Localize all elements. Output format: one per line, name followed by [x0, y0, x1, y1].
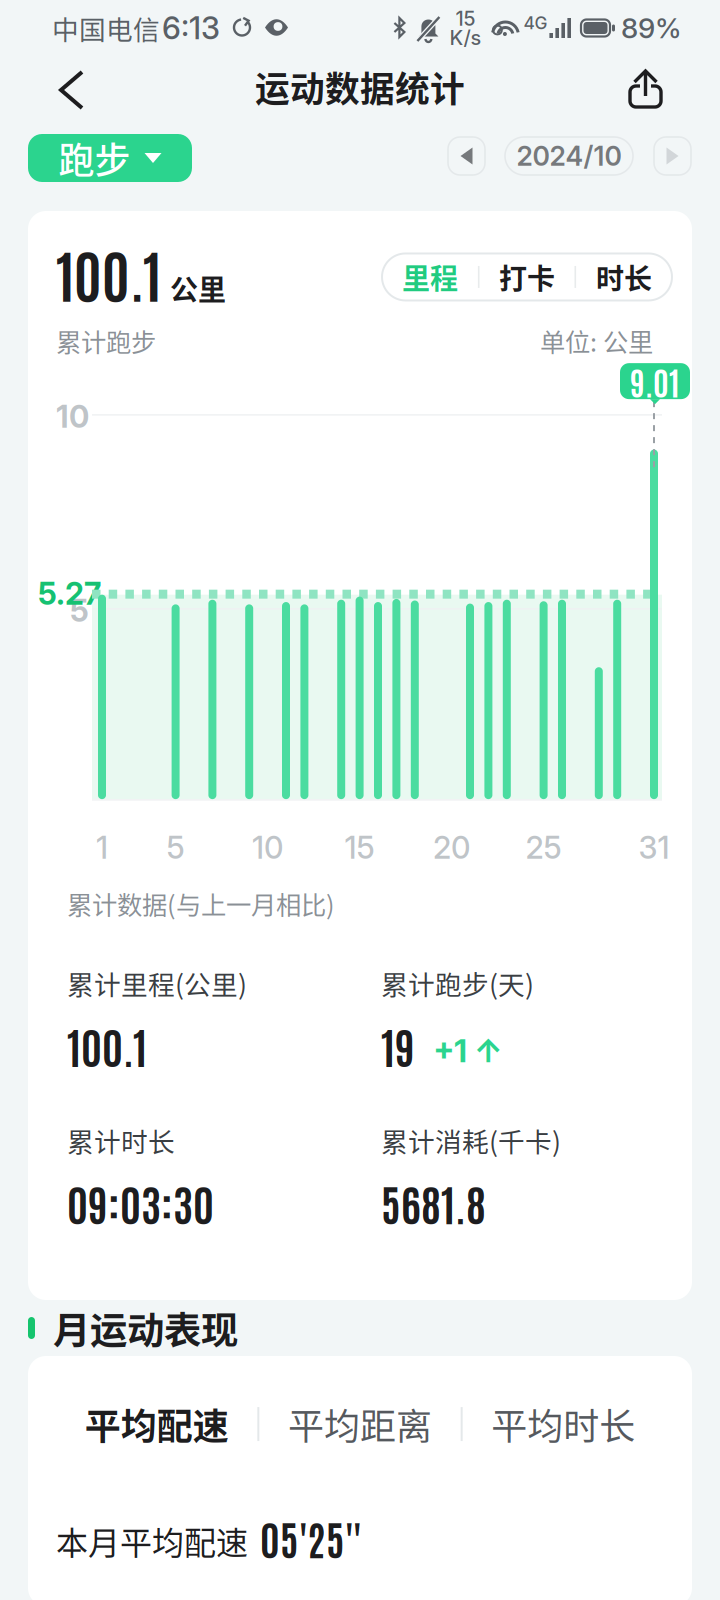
staticText: 10 [56, 398, 89, 435]
staticText: 本月平均配速 [56, 1517, 248, 1564]
staticText: 100.1 [67, 1018, 147, 1073]
staticText: 09:03:30 [67, 1175, 214, 1230]
staticText: 平均配速 [85, 1398, 229, 1450]
staticText: 打卡 [499, 257, 555, 297]
staticText: 累计跑步 [56, 322, 156, 359]
button[interactable]: 平均配速 [56, 1398, 257, 1450]
staticText: 5681.8 [381, 1175, 486, 1230]
staticText: K/s [449, 25, 481, 50]
staticText: 5 [70, 592, 89, 629]
staticText: 平均距离 [288, 1398, 432, 1450]
staticText: 15 [455, 6, 475, 30]
staticText: 时长 [596, 257, 652, 297]
button[interactable]: Share [605, 56, 720, 134]
staticText: 累计时长 [67, 1121, 175, 1160]
staticText: 平均时长 [491, 1398, 635, 1450]
staticText: 跑步 [58, 132, 130, 184]
staticText: 9.01 [630, 360, 680, 402]
staticText: 中国电信 [52, 9, 160, 47]
staticText: 累计里程(公里) [67, 964, 247, 1002]
staticText: 89% [621, 11, 682, 45]
staticText: 累计跑步(天) [381, 964, 534, 1002]
staticText: 里程 [402, 257, 458, 297]
staticText: 运动数据统计 [255, 62, 465, 112]
staticText: 6:13 [162, 9, 220, 46]
button[interactable]: 2024/10 [505, 137, 633, 175]
staticText: 5 [167, 829, 185, 866]
staticText: 2024/10 [516, 140, 621, 172]
staticText: 公里 [170, 268, 226, 308]
staticText: 4G [523, 12, 547, 33]
staticText: 15 [345, 829, 375, 866]
staticText: 月运动表现 [53, 1301, 238, 1355]
button[interactable]: Next month [654, 137, 691, 175]
button[interactable]: Previous month [448, 137, 485, 175]
button[interactable]: 时长 [576, 253, 672, 300]
staticText: 单位: 公里 [540, 322, 653, 359]
staticText: 31 [638, 829, 669, 866]
staticText: 累计消耗(千卡) [381, 1121, 561, 1160]
staticText: 25 [526, 829, 562, 866]
staticText: 05'25'' [260, 1512, 361, 1564]
button[interactable]: 打卡 [479, 253, 574, 300]
staticText: 100.1 [56, 237, 161, 309]
button[interactable]: Back [0, 57, 107, 133]
staticText: 20 [433, 829, 470, 866]
button[interactable]: 里程 [382, 253, 478, 300]
staticText: 19 [381, 1018, 415, 1073]
staticText: 1 [96, 829, 108, 866]
staticText: 累计数据(与上一月相比) [67, 885, 335, 922]
staticText: 5.27 [38, 575, 101, 612]
staticText: 10 [252, 829, 283, 866]
button[interactable]: 跑步 [28, 134, 192, 182]
staticText: +1 ↑ [433, 1031, 503, 1070]
button[interactable]: 平均时长 [463, 1398, 664, 1450]
button[interactable]: 平均距离 [259, 1398, 461, 1450]
